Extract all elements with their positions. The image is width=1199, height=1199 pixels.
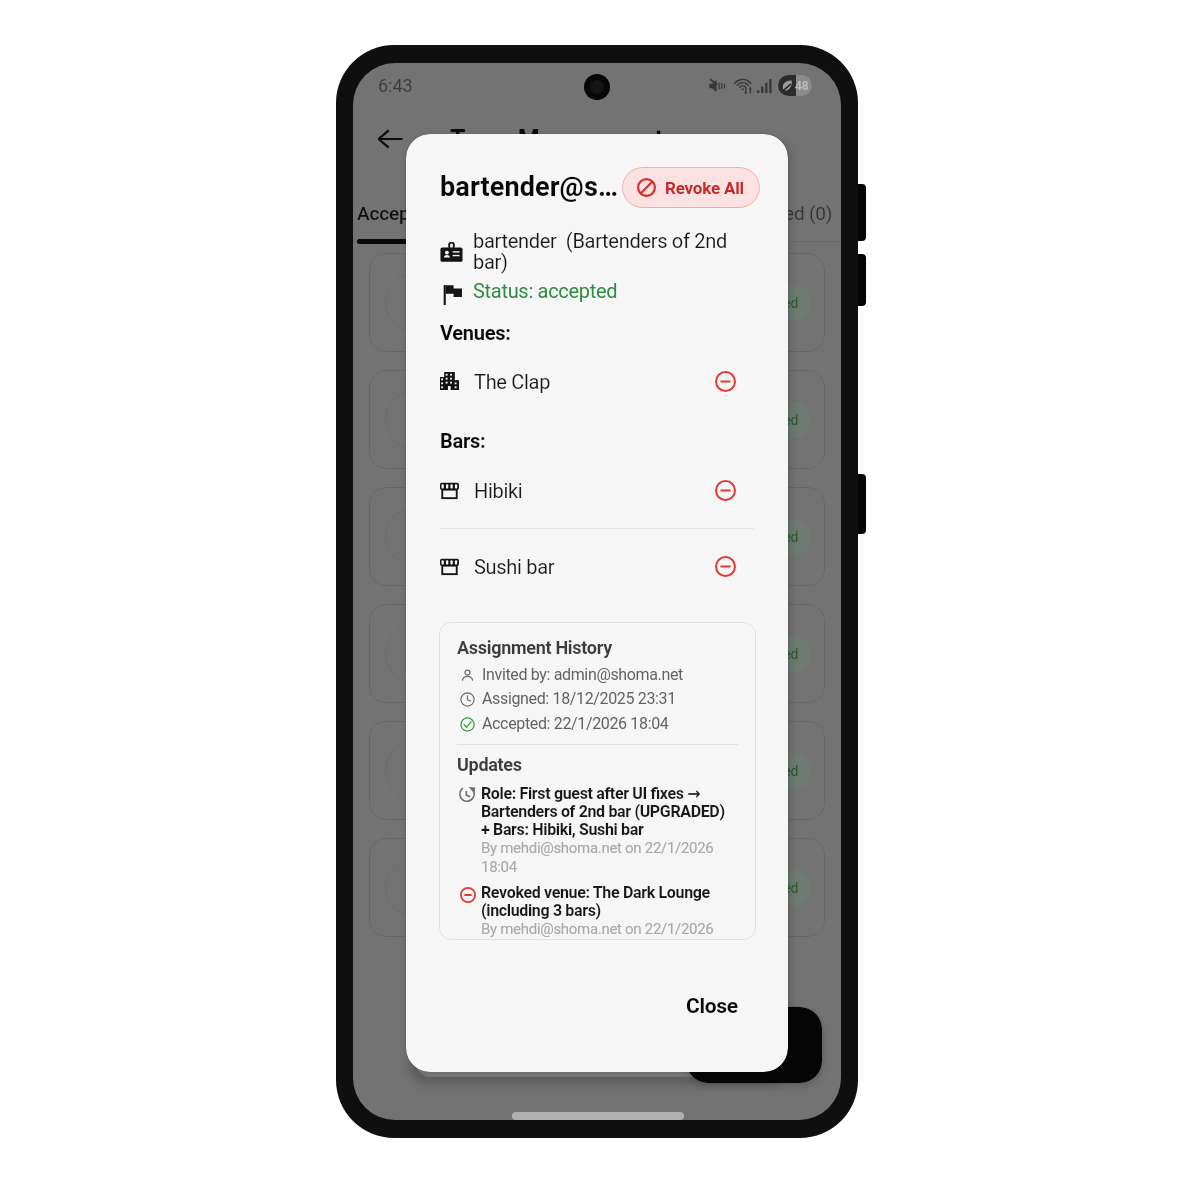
staticText: Team Management xyxy=(450,125,663,154)
staticText: Invited by: admin@shoma.net xyxy=(482,665,683,684)
button[interactable]: accepted xyxy=(369,838,825,937)
button[interactable]: Revoked (0) xyxy=(593,187,833,239)
staticText: Bars: xyxy=(440,429,486,452)
staticText: Revoked venue: The Dark Lounge (includin… xyxy=(481,883,725,920)
button[interactable]: Close xyxy=(672,984,752,1028)
staticText: Accepted (6) xyxy=(357,202,465,224)
button[interactable]: accepted xyxy=(369,604,825,703)
button[interactable]: Invite member xyxy=(686,1007,822,1083)
button[interactable]: Sushi bar xyxy=(436,548,742,584)
staticText: accepted xyxy=(741,295,799,311)
staticText: Role: First guest after UI fixes → Barte… xyxy=(481,784,725,839)
staticText: bartender@s… xyxy=(440,171,618,203)
staticText: 6:43 xyxy=(378,75,413,96)
staticText: Accepted: 22/1/2026 18:04 xyxy=(482,714,669,733)
staticText: Assignment History xyxy=(457,637,612,658)
button[interactable]: Hibiki xyxy=(436,472,742,508)
staticText: accepted xyxy=(741,763,799,779)
staticText: Close xyxy=(686,994,738,1019)
staticText: Status: accepted xyxy=(473,279,618,302)
staticText: By mehdi@shoma.net on 22/1/2026 18:04 xyxy=(481,839,723,876)
button[interactable]: Remove Sushi bar xyxy=(708,549,742,583)
button[interactable]: Remove The Clap xyxy=(708,364,742,398)
button[interactable]: Back xyxy=(366,115,414,163)
staticText: accepted xyxy=(741,646,799,662)
staticText: Hibiki xyxy=(474,479,523,502)
button[interactable]: Accepted (6) xyxy=(357,187,597,239)
staticText: Revoke All xyxy=(665,178,744,198)
staticText: Assigned: 18/12/2025 23:31 xyxy=(482,689,676,708)
button[interactable]: Remove Hibiki xyxy=(708,473,742,507)
staticText: Venues: xyxy=(440,321,511,344)
staticText: accepted xyxy=(741,880,799,896)
staticText: bartender (Bartenders of 2nd bar) xyxy=(473,229,735,274)
staticText: The Clap xyxy=(474,370,551,393)
button[interactable]: The Clap xyxy=(436,363,742,399)
button[interactable]: accepted xyxy=(369,721,825,820)
button[interactable]: accepted xyxy=(369,370,825,469)
button[interactable]: accepted xyxy=(369,487,825,586)
staticText: Updates xyxy=(457,754,522,775)
staticText: accepted xyxy=(741,412,799,428)
staticText: Revoked (0) xyxy=(734,202,833,224)
button[interactable]: Revoke All xyxy=(622,167,760,208)
staticText: Sushi bar xyxy=(474,555,555,578)
staticText: accepted xyxy=(741,529,799,545)
staticText: By mehdi@shoma.net on 22/1/2026 xyxy=(481,920,723,938)
button[interactable]: accepted xyxy=(369,253,825,352)
staticText: 48 xyxy=(795,79,809,93)
